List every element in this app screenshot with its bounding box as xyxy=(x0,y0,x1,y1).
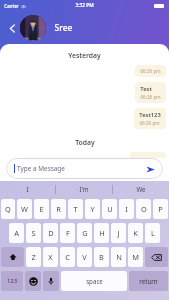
button[interactable]: J xyxy=(111,223,126,243)
staticText: N xyxy=(116,252,122,262)
staticText: J xyxy=(117,228,120,238)
button[interactable]: Test xyxy=(135,82,166,103)
button[interactable]: Backspace xyxy=(145,247,168,267)
button[interactable]: K xyxy=(128,223,143,243)
button[interactable]: Test123 xyxy=(134,108,166,129)
staticText: Type a Message xyxy=(17,164,65,173)
button[interactable]: X xyxy=(43,247,58,267)
button[interactable]: D xyxy=(43,223,58,243)
button[interactable]: Z xyxy=(26,247,41,267)
button[interactable]: V xyxy=(77,247,92,267)
staticText: T xyxy=(73,204,78,214)
button[interactable]: Profile photo of Sree xyxy=(20,15,46,41)
staticText: I'm xyxy=(79,185,89,193)
button[interactable]: I xyxy=(0,181,55,197)
staticText: C xyxy=(65,252,70,262)
staticText: Y xyxy=(90,204,95,214)
button[interactable]: space xyxy=(61,271,127,291)
staticText: 06:26 pm xyxy=(140,94,161,100)
button[interactable]: return xyxy=(129,271,168,291)
button[interactable]: Shift xyxy=(1,247,24,267)
staticText: We xyxy=(136,185,146,193)
button[interactable]: B xyxy=(94,247,109,267)
staticText: Sree xyxy=(54,22,73,34)
staticText: Q xyxy=(5,204,11,214)
button[interactable]: F xyxy=(60,223,75,243)
staticText: W xyxy=(21,204,28,214)
staticText: 06:26 pm xyxy=(140,68,161,74)
button[interactable]: O xyxy=(136,199,151,219)
staticText: I xyxy=(125,204,128,214)
button[interactable]: L xyxy=(145,223,160,243)
staticText: R xyxy=(56,204,61,214)
staticText: S xyxy=(31,228,36,238)
staticText: Test xyxy=(140,85,152,93)
button[interactable]: U xyxy=(102,199,117,219)
button[interactable]: R xyxy=(51,199,66,219)
staticText: V xyxy=(82,252,87,262)
staticText: G xyxy=(82,228,88,238)
button[interactable]: Dictation xyxy=(43,271,59,291)
staticText: P xyxy=(158,204,163,214)
button[interactable]: 06:26 pm xyxy=(135,65,166,77)
button[interactable]: E xyxy=(34,199,49,219)
staticText: Today xyxy=(75,138,95,147)
staticText: Carrier xyxy=(4,3,19,9)
button[interactable]: T xyxy=(68,199,83,219)
button[interactable]: 123 xyxy=(1,271,23,291)
staticText: F xyxy=(66,228,70,238)
staticText: H xyxy=(99,228,105,238)
staticText: space xyxy=(86,277,103,285)
button[interactable]: Y xyxy=(85,199,100,219)
staticText: Test123 xyxy=(139,111,161,119)
button[interactable]: I'm xyxy=(56,181,112,197)
staticText: O xyxy=(141,204,147,214)
staticText: L xyxy=(151,228,155,238)
staticText: M xyxy=(132,252,139,262)
staticText: B xyxy=(99,252,104,262)
button[interactable]: P xyxy=(153,199,168,219)
button[interactable]: We xyxy=(113,181,169,197)
staticText: A xyxy=(14,228,19,238)
staticText: U xyxy=(107,204,113,214)
button[interactable]: W xyxy=(17,199,32,219)
staticText: D xyxy=(48,228,54,238)
staticText: Yesterday xyxy=(68,51,101,60)
button[interactable]: Send xyxy=(144,163,156,175)
staticText: 3:32 PM xyxy=(75,2,94,9)
button[interactable]: I xyxy=(119,199,134,219)
staticText: I xyxy=(26,185,29,193)
button[interactable]: Type a Message xyxy=(6,158,163,179)
staticText: Z xyxy=(31,252,36,262)
button[interactable]: H xyxy=(94,223,109,243)
staticText: E xyxy=(39,204,44,214)
staticText: 06:26 pm xyxy=(139,120,160,126)
button[interactable]: S xyxy=(26,223,41,243)
staticText: 123 xyxy=(7,277,17,285)
button[interactable]: G xyxy=(77,223,92,243)
button[interactable]: Back xyxy=(5,21,19,35)
button[interactable]: N xyxy=(111,247,126,267)
button[interactable]: M xyxy=(128,247,143,267)
staticText: return xyxy=(139,277,158,285)
button[interactable]: Emoji xyxy=(25,271,41,291)
button[interactable]: Q xyxy=(1,199,15,219)
staticText: K xyxy=(133,228,138,238)
button[interactable]: A xyxy=(9,223,24,243)
button[interactable]: C xyxy=(60,247,75,267)
staticText: X xyxy=(48,252,53,262)
